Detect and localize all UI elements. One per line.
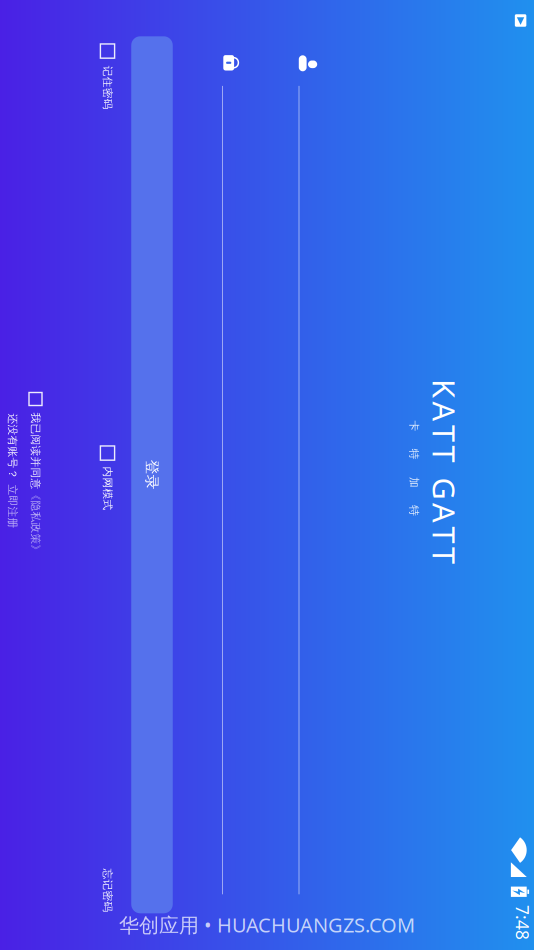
staticText: 我已阅读并同意 (204, 700, 281, 713)
staticText: 卡 (213, 321, 224, 334)
staticText: 特 (297, 321, 308, 334)
staticText: K (171, 277, 190, 318)
staticText: 内网模式 (258, 628, 302, 641)
staticText: 华创应用 • HUACHUANGZS.COM (119, 911, 415, 938)
staticText: T (217, 277, 234, 318)
button[interactable]: 内网模式 (238, 627, 302, 642)
staticText: A (295, 277, 315, 318)
staticText: 立即注册 (276, 723, 320, 736)
staticText: 还没有账号？ (205, 723, 271, 736)
button[interactable]: 登录 (0, 569, 534, 611)
button[interactable]: 还没有账号？ (205, 723, 320, 736)
button[interactable]: 我已阅读并同意 (184, 700, 347, 713)
staticText: 《隐私政策》 (281, 700, 347, 713)
